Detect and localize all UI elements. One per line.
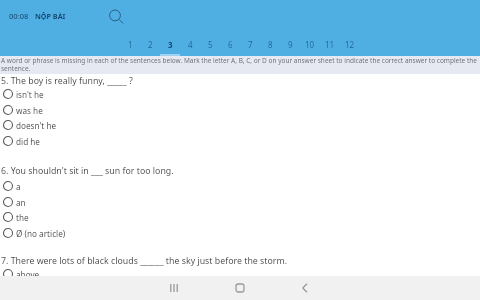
staticText: 10 (305, 39, 315, 50)
button[interactable]: was he (0, 103, 480, 117)
staticText: 11 (325, 39, 335, 50)
button[interactable]: 12 (340, 33, 360, 56)
staticText: 7. There were lots of black clouds _____… (1, 255, 288, 267)
staticText: 8 (268, 39, 273, 50)
button[interactable]: Ø (no article) (0, 226, 480, 240)
button[interactable]: doesn't he (0, 118, 480, 132)
staticText: 7 (248, 39, 253, 50)
button[interactable]: Search (105, 5, 127, 27)
button[interactable]: above (0, 267, 480, 281)
staticText: 1 (128, 39, 133, 50)
button[interactable]: the (0, 210, 480, 224)
staticText: was he (16, 105, 43, 116)
staticText: 2 (148, 39, 153, 50)
staticText: 5 (208, 39, 213, 50)
button[interactable]: Recent apps (163, 276, 185, 300)
button[interactable]: 1 (120, 33, 140, 56)
button[interactable]: 6 (220, 33, 240, 56)
staticText: a (16, 181, 21, 192)
button[interactable]: NỘP BÀI (34, 8, 67, 24)
button[interactable]: 2 (140, 33, 160, 56)
staticText: 9 (288, 39, 293, 50)
staticText: 6 (228, 39, 233, 50)
button[interactable]: an (0, 195, 480, 209)
staticText: Ø (no article) (16, 228, 66, 239)
staticText: 5. The boy is really funny, _____ ? (1, 75, 133, 87)
staticText: 4 (188, 39, 193, 50)
staticText: A word or phrase is missing in each of t… (1, 56, 477, 73)
staticText: above (16, 269, 40, 280)
button[interactable]: 5 (200, 33, 220, 56)
button[interactable]: 9 (280, 33, 300, 56)
staticText: isn't he (16, 89, 44, 100)
staticText: did he (16, 136, 40, 147)
staticText: 12 (345, 39, 355, 50)
staticText: doesn't he (16, 120, 57, 131)
button[interactable]: did he (0, 134, 480, 148)
staticText: 6. You shouldn't sit in ___ sun for too … (1, 165, 174, 177)
button[interactable]: Back (294, 276, 316, 300)
button[interactable]: isn't he (0, 87, 480, 101)
staticText: NỘP BÀI (35, 11, 66, 21)
button[interactable]: 11 (320, 33, 340, 56)
button[interactable]: 4 (180, 33, 200, 56)
button[interactable]: a (0, 179, 480, 193)
button[interactable]: 7 (240, 33, 260, 56)
button[interactable]: 10 (300, 33, 320, 56)
staticText: 3 (168, 39, 173, 50)
button[interactable]: 3 (160, 33, 180, 56)
staticText: the (16, 212, 29, 223)
staticText: 00:08 (9, 11, 29, 21)
staticText: an (16, 197, 26, 208)
button[interactable]: 8 (260, 33, 280, 56)
button[interactable]: Home (229, 276, 251, 300)
